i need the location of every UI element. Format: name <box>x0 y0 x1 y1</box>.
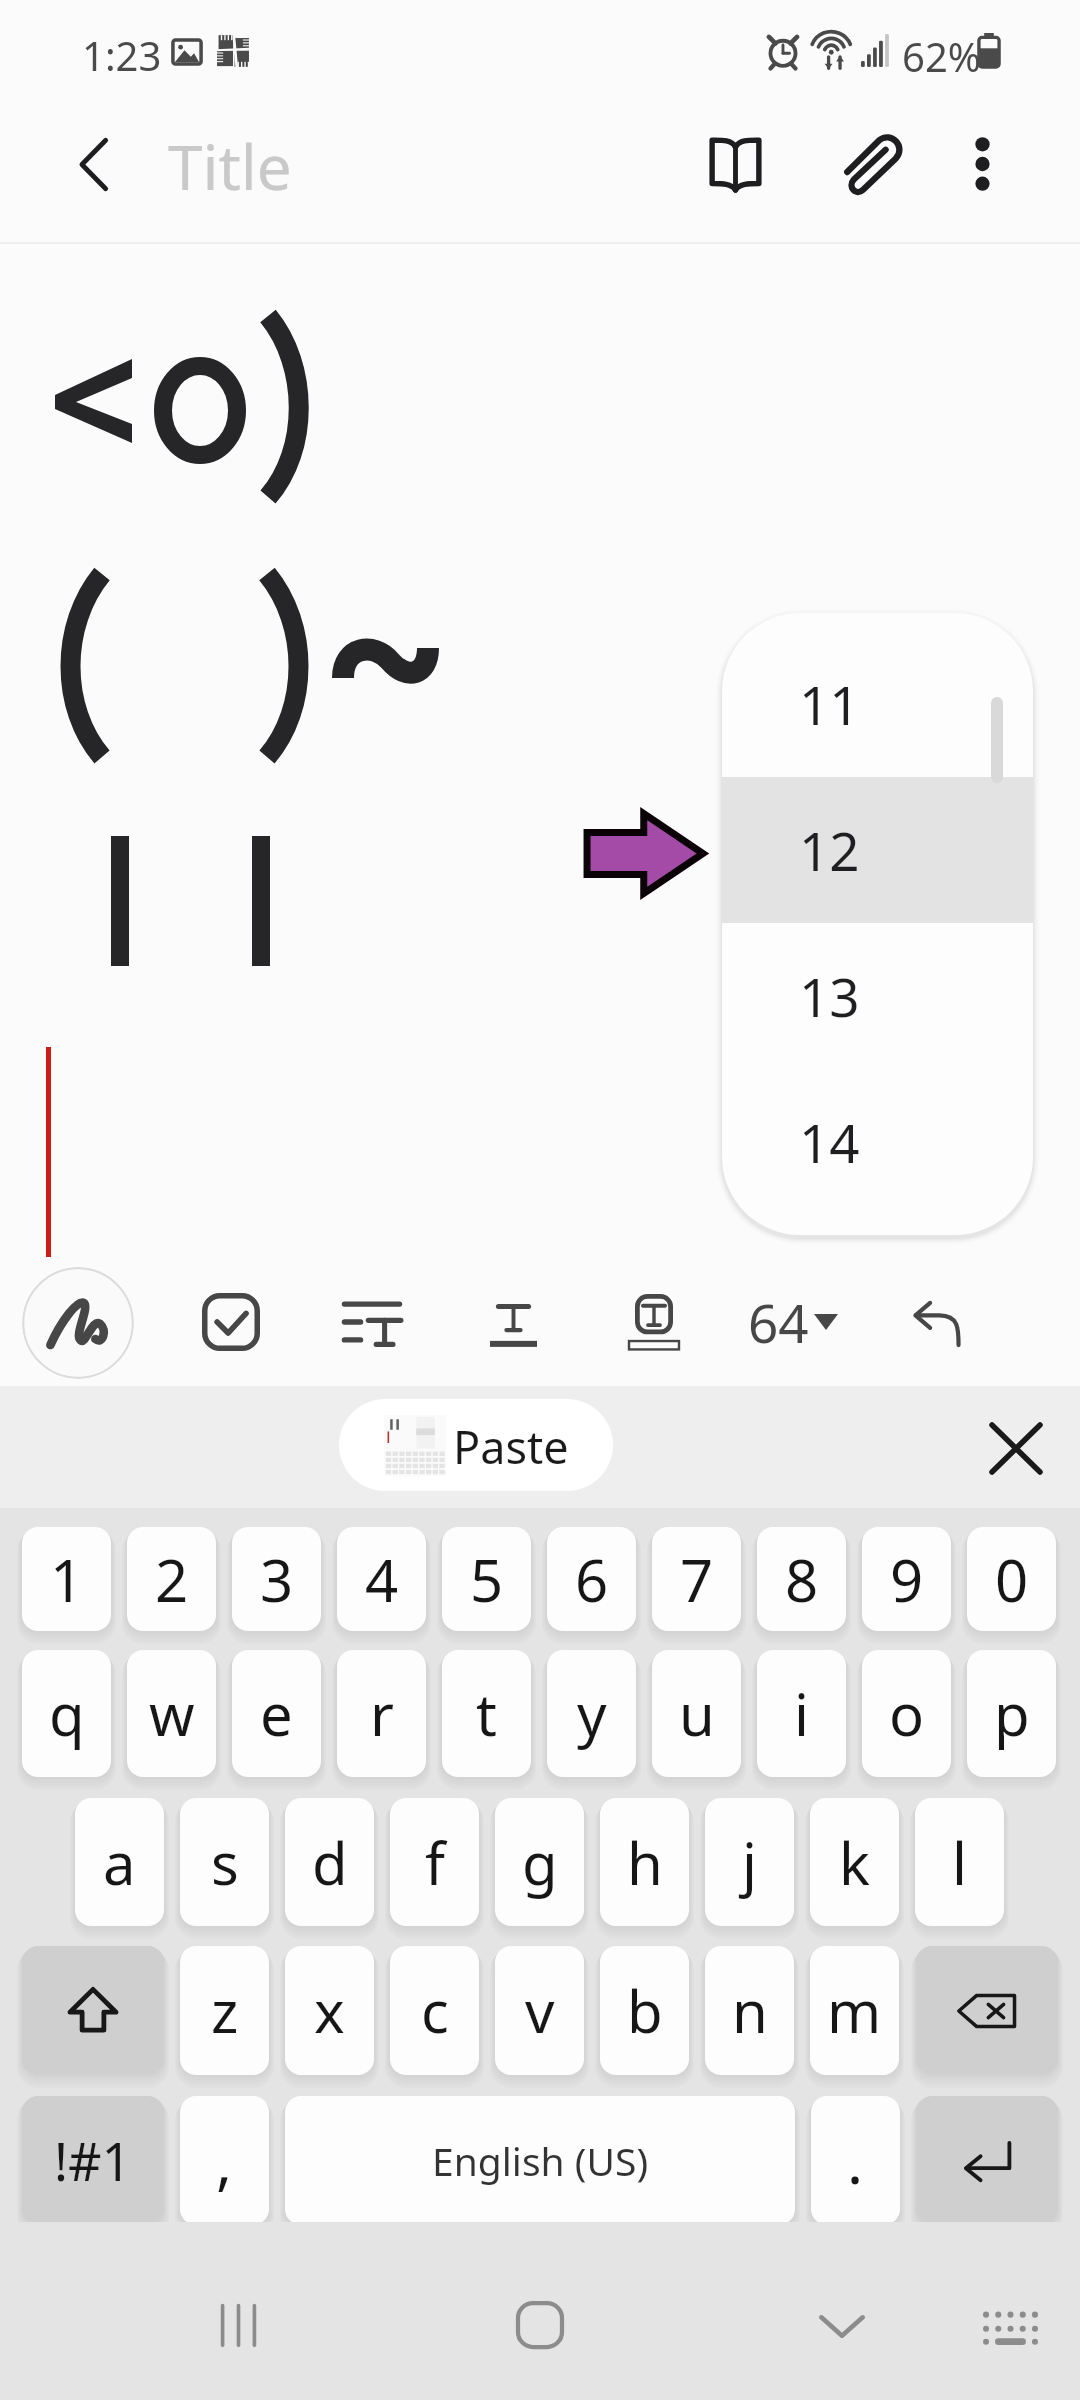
button[interactable]: 1 <box>22 1527 111 1631</box>
button[interactable]: 9 <box>862 1527 951 1631</box>
button[interactable]: 8 <box>757 1527 846 1631</box>
staticText: t <box>476 1674 497 1753</box>
staticText: v <box>525 1971 555 2050</box>
button[interactable]: d <box>285 1798 374 1926</box>
staticText: f <box>425 1823 445 1902</box>
button[interactable]: More options <box>932 114 1032 214</box>
button[interactable]: g <box>495 1798 584 1926</box>
staticText: z <box>211 1971 239 2050</box>
button[interactable]: 0 <box>967 1527 1056 1631</box>
button[interactable]: n <box>705 1946 794 2075</box>
staticText: 13 <box>799 960 860 1032</box>
staticText: 2 <box>155 1540 189 1619</box>
button[interactable]: , <box>180 2096 269 2225</box>
staticText: 11 <box>799 668 860 740</box>
button[interactable]: Back <box>38 109 148 219</box>
button[interactable]: y <box>547 1650 636 1777</box>
button[interactable]: Recents <box>183 2270 293 2380</box>
button[interactable]: Change keyboard <box>955 2272 1065 2382</box>
button[interactable]: v <box>495 1946 584 2075</box>
button[interactable]: English (US) <box>285 2096 795 2225</box>
button[interactable]: . <box>811 2096 900 2225</box>
button[interactable]: s <box>180 1798 269 1926</box>
staticText: 1:23 <box>82 28 162 82</box>
button[interactable]: j <box>705 1798 794 1926</box>
staticText: g <box>522 1823 558 1902</box>
button[interactable]: Paragraph style <box>317 1267 427 1377</box>
button[interactable]: z <box>180 1946 269 2075</box>
button[interactable]: r <box>337 1650 426 1777</box>
staticText: u <box>679 1674 715 1753</box>
staticText: 4 <box>365 1540 399 1619</box>
button[interactable]: c <box>390 1946 479 2075</box>
button[interactable]: !#1 <box>22 2096 164 2225</box>
button[interactable]: h <box>600 1798 689 1926</box>
button[interactable]: 14 <box>722 1069 1033 1215</box>
staticText: o <box>889 1674 925 1753</box>
button[interactable]: Handwriting <box>22 1267 134 1379</box>
staticText: r <box>370 1674 394 1753</box>
button[interactable]: 11 <box>722 631 1033 777</box>
button[interactable]: e <box>232 1650 321 1777</box>
staticText: 62% <box>902 29 981 83</box>
staticText: q <box>49 1674 85 1753</box>
staticText: w <box>149 1674 195 1753</box>
button[interactable]: w <box>127 1650 216 1777</box>
button[interactable]: 7 <box>652 1527 741 1631</box>
button[interactable]: Undo <box>881 1269 991 1379</box>
staticText: n <box>732 1971 768 2050</box>
button[interactable]: Shift <box>22 1946 164 2075</box>
button[interactable]: 3 <box>232 1527 321 1631</box>
staticText: a <box>103 1823 136 1902</box>
button[interactable]: 6 <box>547 1527 636 1631</box>
staticText: 12 <box>799 814 860 886</box>
staticText: 8 <box>785 1540 819 1619</box>
staticText: e <box>260 1674 293 1753</box>
button[interactable]: Close <box>966 1398 1066 1498</box>
button[interactable]: u <box>652 1650 741 1777</box>
button[interactable]: p <box>967 1650 1056 1777</box>
button[interactable]: Underline <box>458 1271 568 1381</box>
button[interactable]: i <box>757 1650 846 1777</box>
staticText: 0 <box>995 1540 1029 1619</box>
button[interactable]: q <box>22 1650 111 1777</box>
staticText: , <box>216 2120 233 2202</box>
button[interactable]: Attach <box>815 106 931 222</box>
staticText: c <box>421 1971 449 2050</box>
button[interactable]: Text highlight <box>599 1267 709 1377</box>
staticText: y <box>577 1674 607 1753</box>
staticText: !#1 <box>54 2125 132 2196</box>
button[interactable]: l <box>915 1798 1004 1926</box>
button[interactable]: o <box>862 1650 951 1777</box>
button[interactable]: b <box>600 1946 689 2075</box>
button[interactable]: m <box>810 1946 899 2075</box>
button[interactable]: k <box>810 1798 899 1926</box>
staticText: 14 <box>799 1106 860 1178</box>
button[interactable]: Home <box>485 2270 595 2380</box>
button[interactable]: Title <box>168 116 428 216</box>
button[interactable]: a <box>75 1798 164 1926</box>
button[interactable]: Reading view <box>677 106 793 222</box>
staticText: j <box>742 1823 757 1902</box>
button[interactable]: 13 <box>722 923 1033 1069</box>
button[interactable]: Backspace <box>916 1946 1058 2075</box>
staticText: l <box>952 1823 967 1902</box>
button[interactable]: 64 <box>748 1267 838 1377</box>
button[interactable]: x <box>285 1946 374 2075</box>
staticText: k <box>839 1823 870 1902</box>
button[interactable]: f <box>390 1798 479 1926</box>
button[interactable]: Checklist <box>176 1267 286 1377</box>
button[interactable]: 5 <box>442 1527 531 1631</box>
button[interactable]: t <box>442 1650 531 1777</box>
staticText: 9 <box>890 1540 924 1619</box>
staticText: 6 <box>575 1540 609 1619</box>
staticText: 1 <box>50 1540 84 1619</box>
staticText: 3 <box>260 1540 294 1619</box>
button[interactable]: Hide keyboard <box>787 2271 897 2381</box>
button[interactable]: 2 <box>127 1527 216 1631</box>
button[interactable]: 4 <box>337 1527 426 1631</box>
button[interactable]: Paste <box>339 1399 613 1491</box>
button[interactable]: 12 <box>722 777 1033 923</box>
staticText: English (US) <box>432 2134 649 2187</box>
button[interactable]: Enter <box>916 2096 1058 2225</box>
